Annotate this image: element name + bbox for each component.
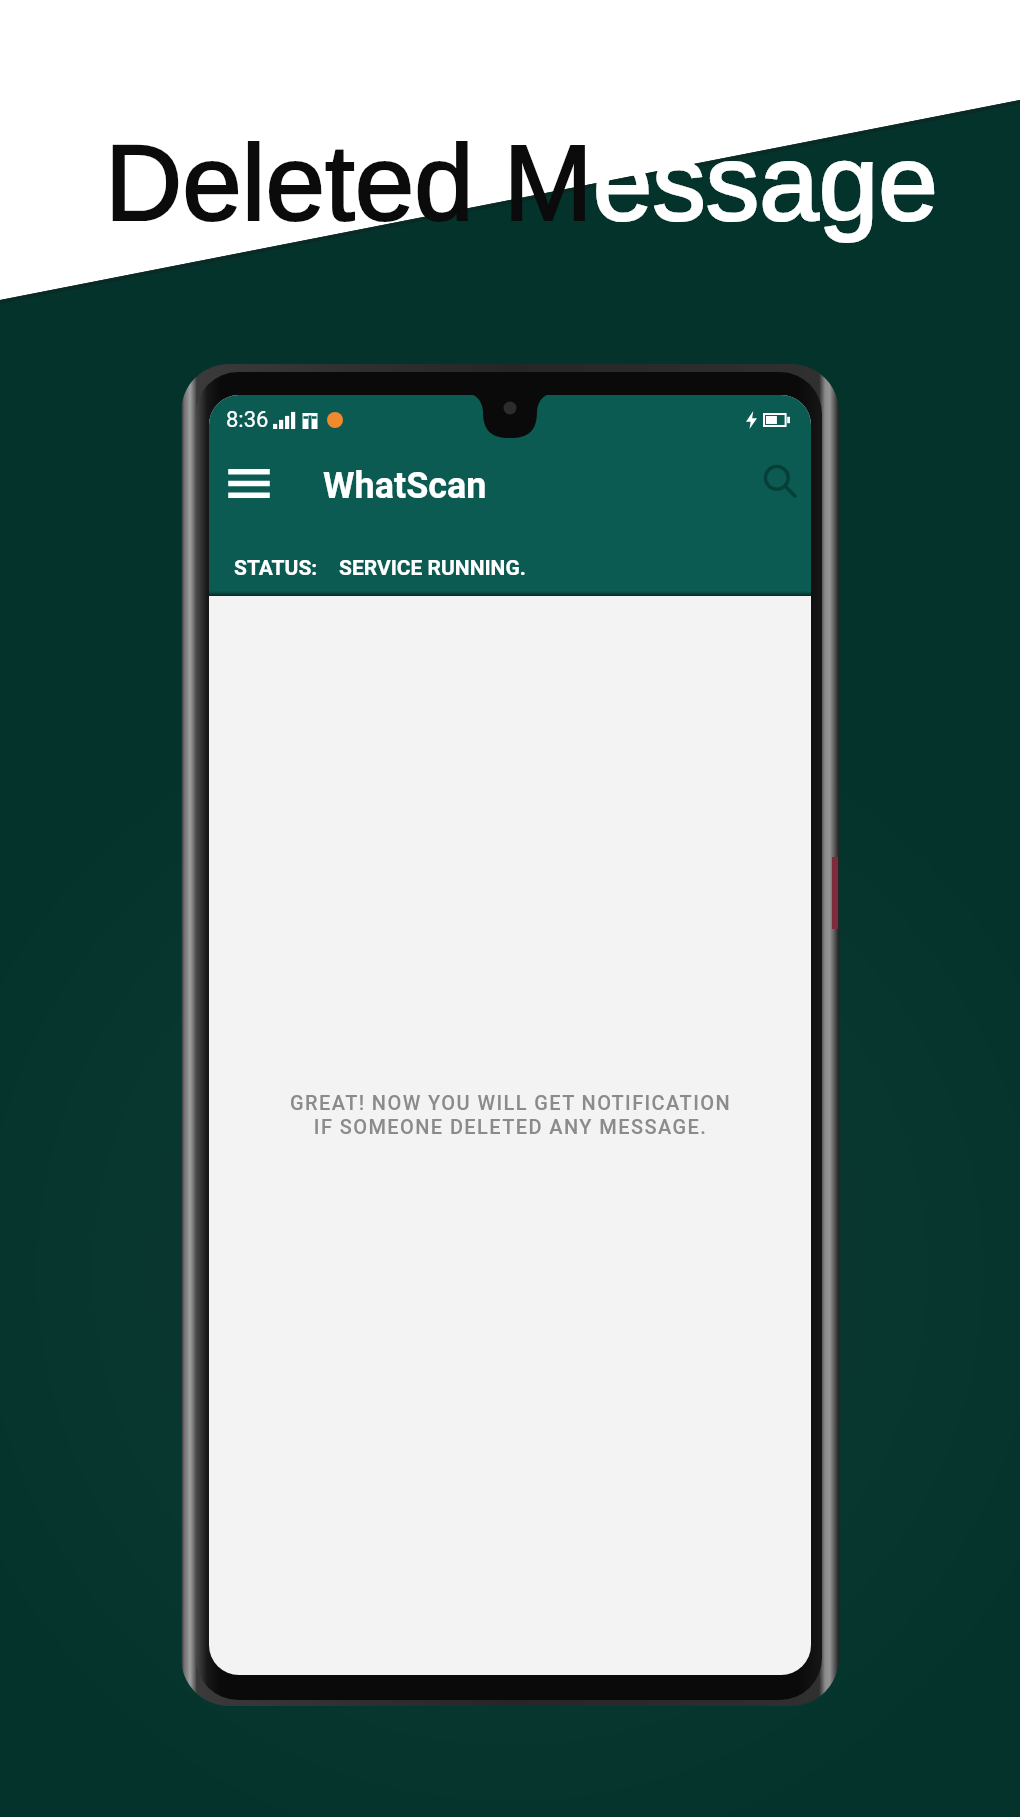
staticText: Deleted Message xyxy=(105,123,938,243)
staticText: STATUS: xyxy=(234,556,318,581)
staticText: Deleted Message xyxy=(105,123,938,243)
button[interactable]: Search xyxy=(754,455,808,509)
button[interactable]: Open navigation drawer xyxy=(222,456,276,510)
staticText: 8:36 xyxy=(226,407,269,433)
staticText: Deleted Message xyxy=(105,123,938,243)
staticText: Deleted Message xyxy=(105,123,938,243)
staticText: GREAT! NOW YOU WILL GET NOTIFICATION IF … xyxy=(290,1091,731,1139)
staticText: WhatScan xyxy=(323,465,487,507)
staticText: SERVICE RUNNING. xyxy=(339,556,526,581)
